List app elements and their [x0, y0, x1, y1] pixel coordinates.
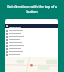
button[interactable]: Directions [5, 24, 58, 28]
button[interactable] [5, 38, 58, 41]
staticText: Directions [9, 25, 21, 28]
staticText: Get directions with the tap of a button [3, 4, 61, 14]
button[interactable] [5, 29, 58, 32]
button[interactable] [5, 41, 58, 44]
button[interactable] [5, 32, 58, 35]
button[interactable] [5, 35, 58, 38]
button[interactable] [5, 53, 58, 56]
button[interactable] [5, 47, 58, 50]
button[interactable] [5, 44, 58, 47]
button[interactable] [5, 50, 58, 53]
